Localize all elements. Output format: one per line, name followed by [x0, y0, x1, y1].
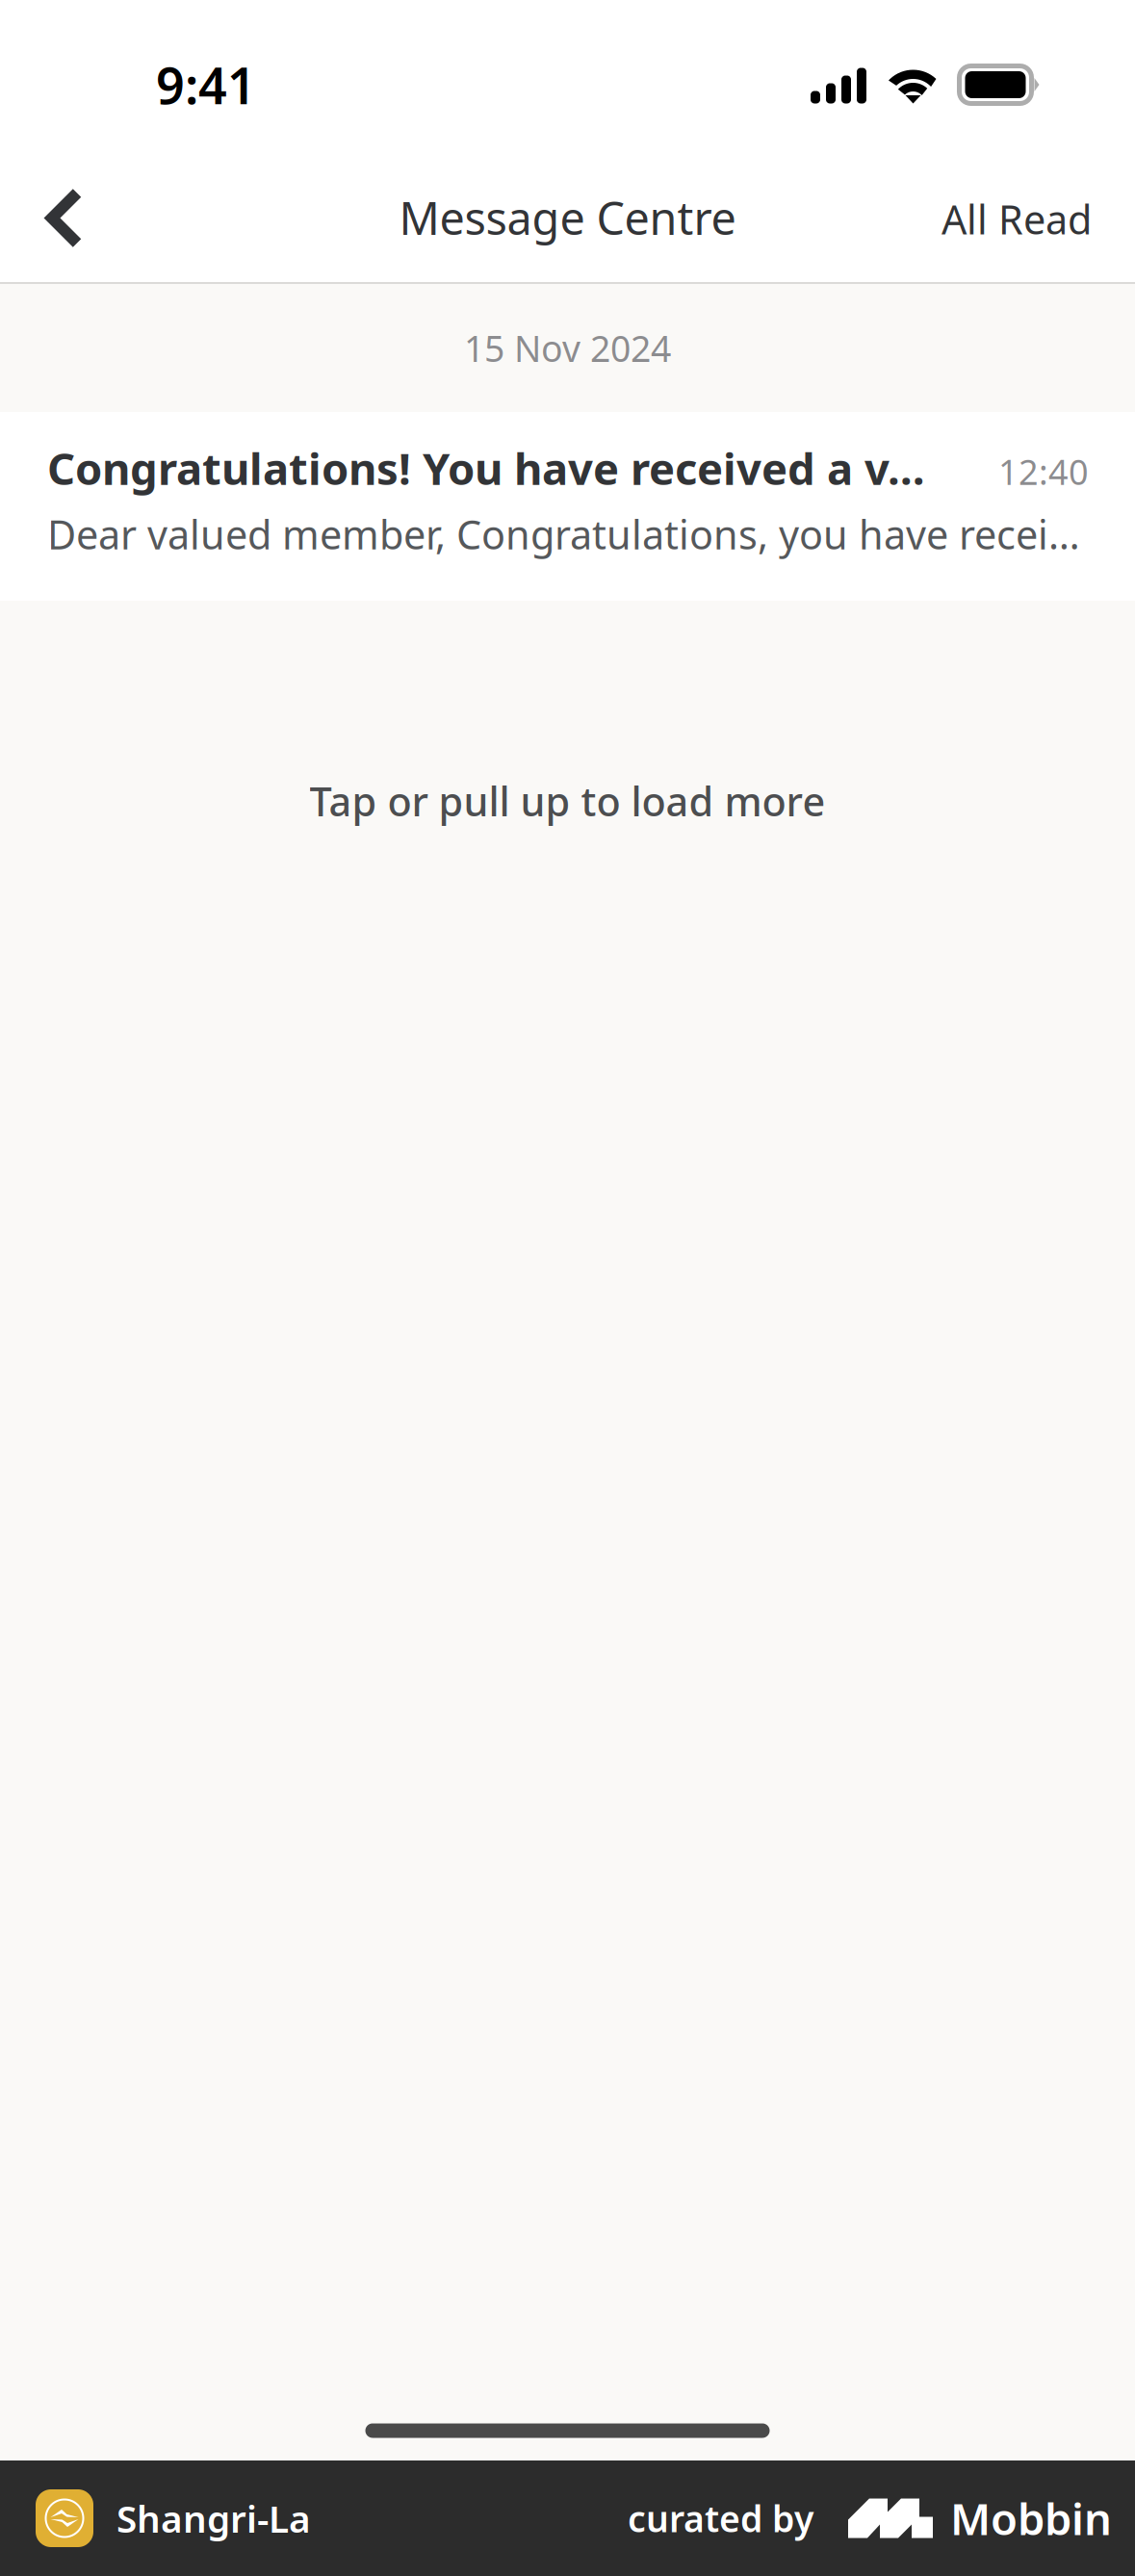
staticText: Congratulations! You have received a v… [47, 439, 925, 497]
staticText: Mobbin [950, 2489, 1112, 2547]
button[interactable]: Tap or pull up to load more [0, 601, 1135, 1001]
staticText: Message Centre [399, 188, 736, 247]
staticText: All Read [942, 193, 1092, 245]
staticText: Dear valued member, Congratulations, you… [47, 507, 1089, 560]
button[interactable]: All Read [942, 151, 1135, 276]
staticText: curated by [628, 2494, 813, 2542]
staticText: 9:41 [156, 52, 256, 118]
staticText: Shangri-La [116, 2494, 311, 2543]
staticText: 12:40 [998, 448, 1089, 494]
staticText: Tap or pull up to load more [310, 775, 825, 827]
button[interactable]: Congratulations! You have received a v… [0, 412, 1135, 601]
button[interactable]: Back [0, 152, 101, 275]
staticText: 15 Nov 2024 [464, 324, 671, 372]
